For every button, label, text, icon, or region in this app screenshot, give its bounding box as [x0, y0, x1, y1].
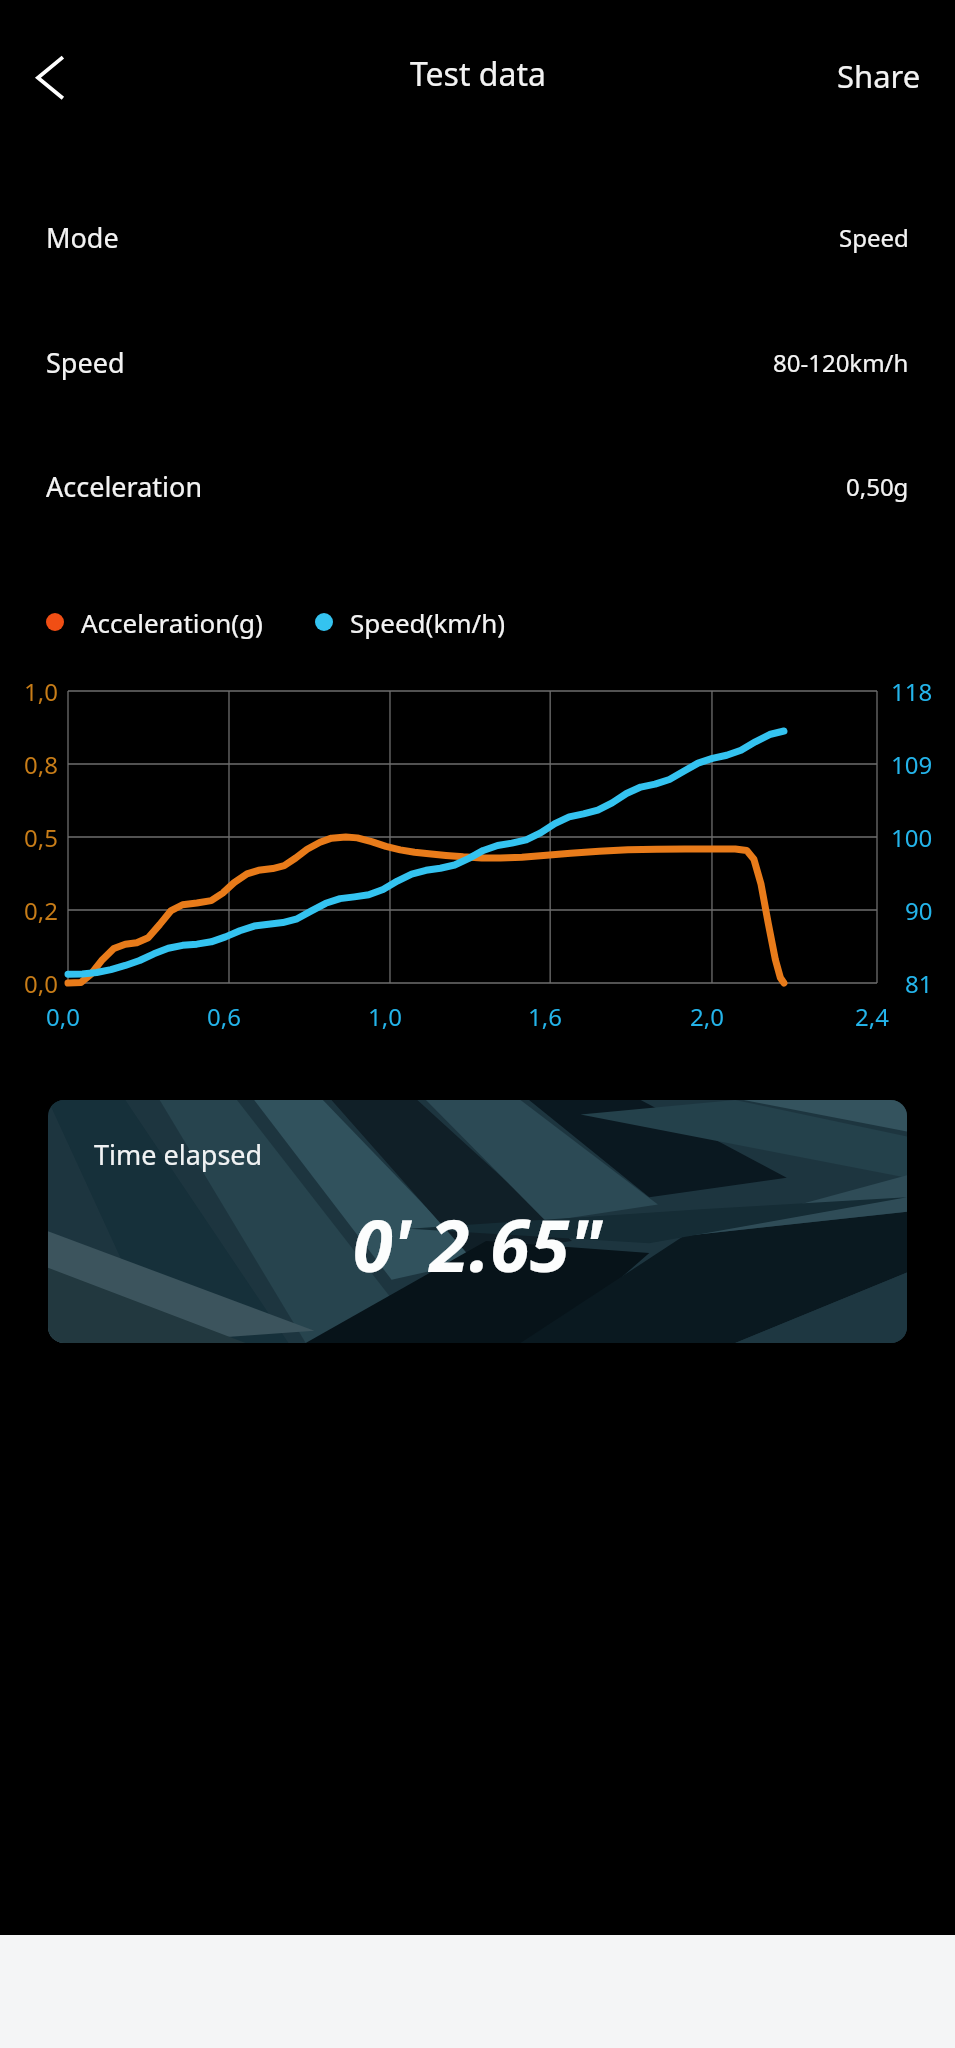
staticText: 0,50g — [846, 470, 909, 503]
staticText: 0,0 — [46, 1000, 80, 1033]
staticText: 81 — [905, 967, 933, 1000]
staticText: 0,8 — [24, 748, 58, 781]
staticText: 0,2 — [24, 894, 58, 927]
staticText: 90 — [905, 894, 933, 927]
staticText: 100 — [891, 821, 933, 854]
staticText: 2,4 — [855, 1000, 889, 1033]
staticText: 80-120km/h — [773, 346, 909, 379]
button[interactable]: Speed — [0, 300, 955, 424]
staticText: 0,0 — [24, 967, 58, 1000]
staticText: Time elapsed — [94, 1136, 263, 1173]
staticText: 1,0 — [24, 675, 58, 708]
staticText: Speed — [46, 344, 125, 381]
staticText: Acceleration(g) — [81, 605, 263, 640]
button[interactable]: Mode — [0, 174, 955, 300]
staticText: Test data — [410, 52, 546, 96]
staticText: Speed(km/h) — [350, 605, 506, 640]
staticText: 118 — [891, 675, 933, 708]
staticText: Share — [837, 55, 921, 97]
staticText: 109 — [891, 748, 933, 781]
button[interactable]: Acceleration — [0, 424, 955, 548]
staticText: Acceleration — [46, 468, 203, 505]
staticText: Speed — [839, 221, 909, 254]
staticText: 1,0 — [368, 1000, 402, 1033]
staticText: 2,0 — [690, 1000, 724, 1033]
staticText: 0' 2.65" — [353, 1195, 603, 1293]
button[interactable]: Time elapsed — [48, 1100, 907, 1343]
button[interactable]: Share — [819, 41, 939, 111]
button[interactable]: Back — [6, 34, 90, 118]
staticText: 0,5 — [24, 821, 58, 854]
staticText: 0,6 — [207, 1000, 241, 1033]
staticText: Mode — [46, 219, 119, 256]
staticText: 1,6 — [528, 1000, 562, 1033]
